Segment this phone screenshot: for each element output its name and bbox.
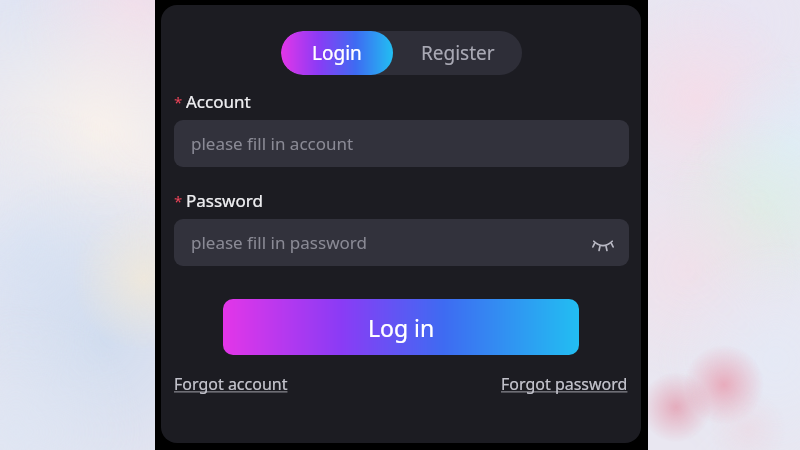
button[interactable]: please fill in account — [174, 120, 629, 167]
staticText: * — [174, 191, 183, 211]
button[interactable]: Forgot password — [501, 373, 628, 395]
staticText: Register — [421, 40, 495, 66]
button[interactable]: Forgot account — [174, 373, 288, 395]
staticText: Forgot password — [501, 373, 628, 395]
staticText: Account — [186, 90, 251, 113]
staticText: Password — [186, 189, 263, 212]
staticText: Log in — [368, 312, 435, 343]
staticText: please fill in account — [191, 132, 354, 155]
staticText: Login — [312, 40, 362, 66]
staticText: please fill in password — [191, 231, 367, 254]
button[interactable]: Login — [281, 31, 393, 75]
staticText: * — [174, 92, 183, 112]
button[interactable]: Register — [393, 31, 522, 75]
button[interactable]: please fill in password — [174, 219, 629, 266]
staticText: Forgot account — [174, 373, 288, 395]
button[interactable]: Show password — [589, 229, 617, 257]
button[interactable]: Log in — [223, 299, 579, 355]
